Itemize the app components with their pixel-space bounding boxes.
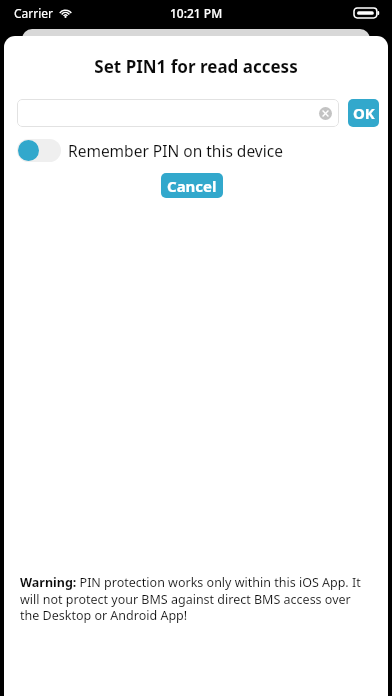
staticText: Warning: PIN protection works only withi… xyxy=(20,574,362,623)
button[interactable]: OK xyxy=(348,99,379,127)
staticText: Set PIN1 for read access xyxy=(4,55,388,78)
staticText: Cancel xyxy=(167,176,217,196)
staticText: 10:21 PM xyxy=(170,5,223,21)
button[interactable]: Clear text xyxy=(319,107,332,120)
button[interactable]: Remember PIN toggle xyxy=(17,139,61,162)
staticText: Remember PIN on this device xyxy=(68,140,283,161)
button[interactable]: Cancel xyxy=(161,173,223,198)
staticText: Carrier xyxy=(14,5,54,21)
staticText: OK xyxy=(353,103,375,123)
button[interactable]: Clear text xyxy=(17,99,339,127)
